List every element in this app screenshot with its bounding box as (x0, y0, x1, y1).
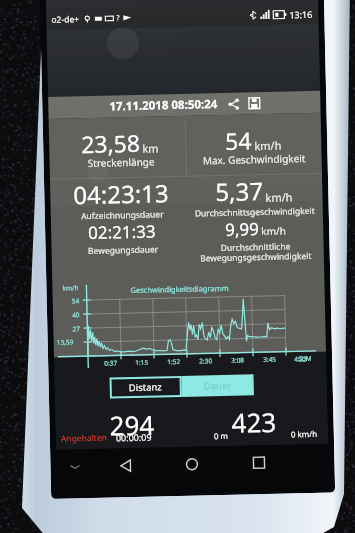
staticText: 02:21:33 (88, 219, 156, 244)
staticText: 9,99 (225, 217, 259, 241)
staticText: 2:30 (199, 356, 212, 365)
staticText: 13:16 (289, 8, 313, 20)
staticText: 294 (109, 407, 155, 443)
button[interactable]: Home (158, 446, 226, 481)
staticText: 1:15 (135, 358, 148, 367)
button[interactable]: Distanz (109, 376, 182, 398)
staticText: km/h (265, 189, 294, 205)
button[interactable]: Share (227, 97, 240, 111)
staticText: 0 m (214, 430, 229, 441)
button[interactable]: Hide navigation bar (56, 449, 93, 484)
staticText: ? (116, 13, 120, 23)
staticText: Distanz (129, 380, 163, 394)
staticText: Geschwindigkeitsdiagramm (130, 283, 230, 295)
staticText: 23,58 (81, 127, 140, 159)
staticText: 3:08 (231, 355, 244, 365)
staticText: 00:00:09 (116, 431, 152, 443)
staticText: 54 (72, 296, 80, 305)
staticText: Aufzeichnungsdauer (81, 208, 164, 222)
staticText: 13,59 (57, 337, 74, 347)
staticText: 04:23:13 (73, 176, 170, 211)
staticText: St:M (298, 354, 312, 363)
staticText: 0:37 (104, 358, 117, 368)
staticText: 1:52 (167, 357, 180, 366)
staticText: Max. Geschwindigkeit (202, 151, 306, 167)
button[interactable]: Recent apps (225, 444, 293, 480)
staticText: km/h (62, 283, 79, 293)
staticText: 27 (72, 324, 80, 333)
staticText: Bewegungsdauer (87, 243, 159, 257)
staticText: Dauer (204, 379, 232, 392)
staticText: o2-de+ (51, 13, 79, 26)
button[interactable]: Back (92, 447, 159, 483)
button[interactable]: Save (248, 97, 260, 109)
staticText: km/h (254, 138, 282, 153)
staticText: 3:45 (263, 355, 276, 364)
staticText: Durchschnittliche Bewegungsgeschwindigke… (199, 240, 312, 264)
staticText: 54 (225, 124, 252, 156)
staticText: 40 (72, 310, 80, 319)
button[interactable]: Dauer (181, 374, 254, 397)
staticText: 423 (231, 404, 277, 440)
staticText: 4:23 (294, 354, 307, 363)
staticText: km (142, 140, 159, 156)
staticText: Streckenlänge (87, 154, 155, 170)
staticText: 0 km/h (291, 428, 318, 439)
staticText: km/h (261, 223, 286, 238)
staticText: Durchschnittsgeschwindigkeit (195, 205, 315, 220)
staticText: Angehalten (61, 432, 108, 445)
staticText: 5,37 (215, 174, 264, 208)
staticText: 17.11.2018 08:50:24 (109, 96, 218, 114)
